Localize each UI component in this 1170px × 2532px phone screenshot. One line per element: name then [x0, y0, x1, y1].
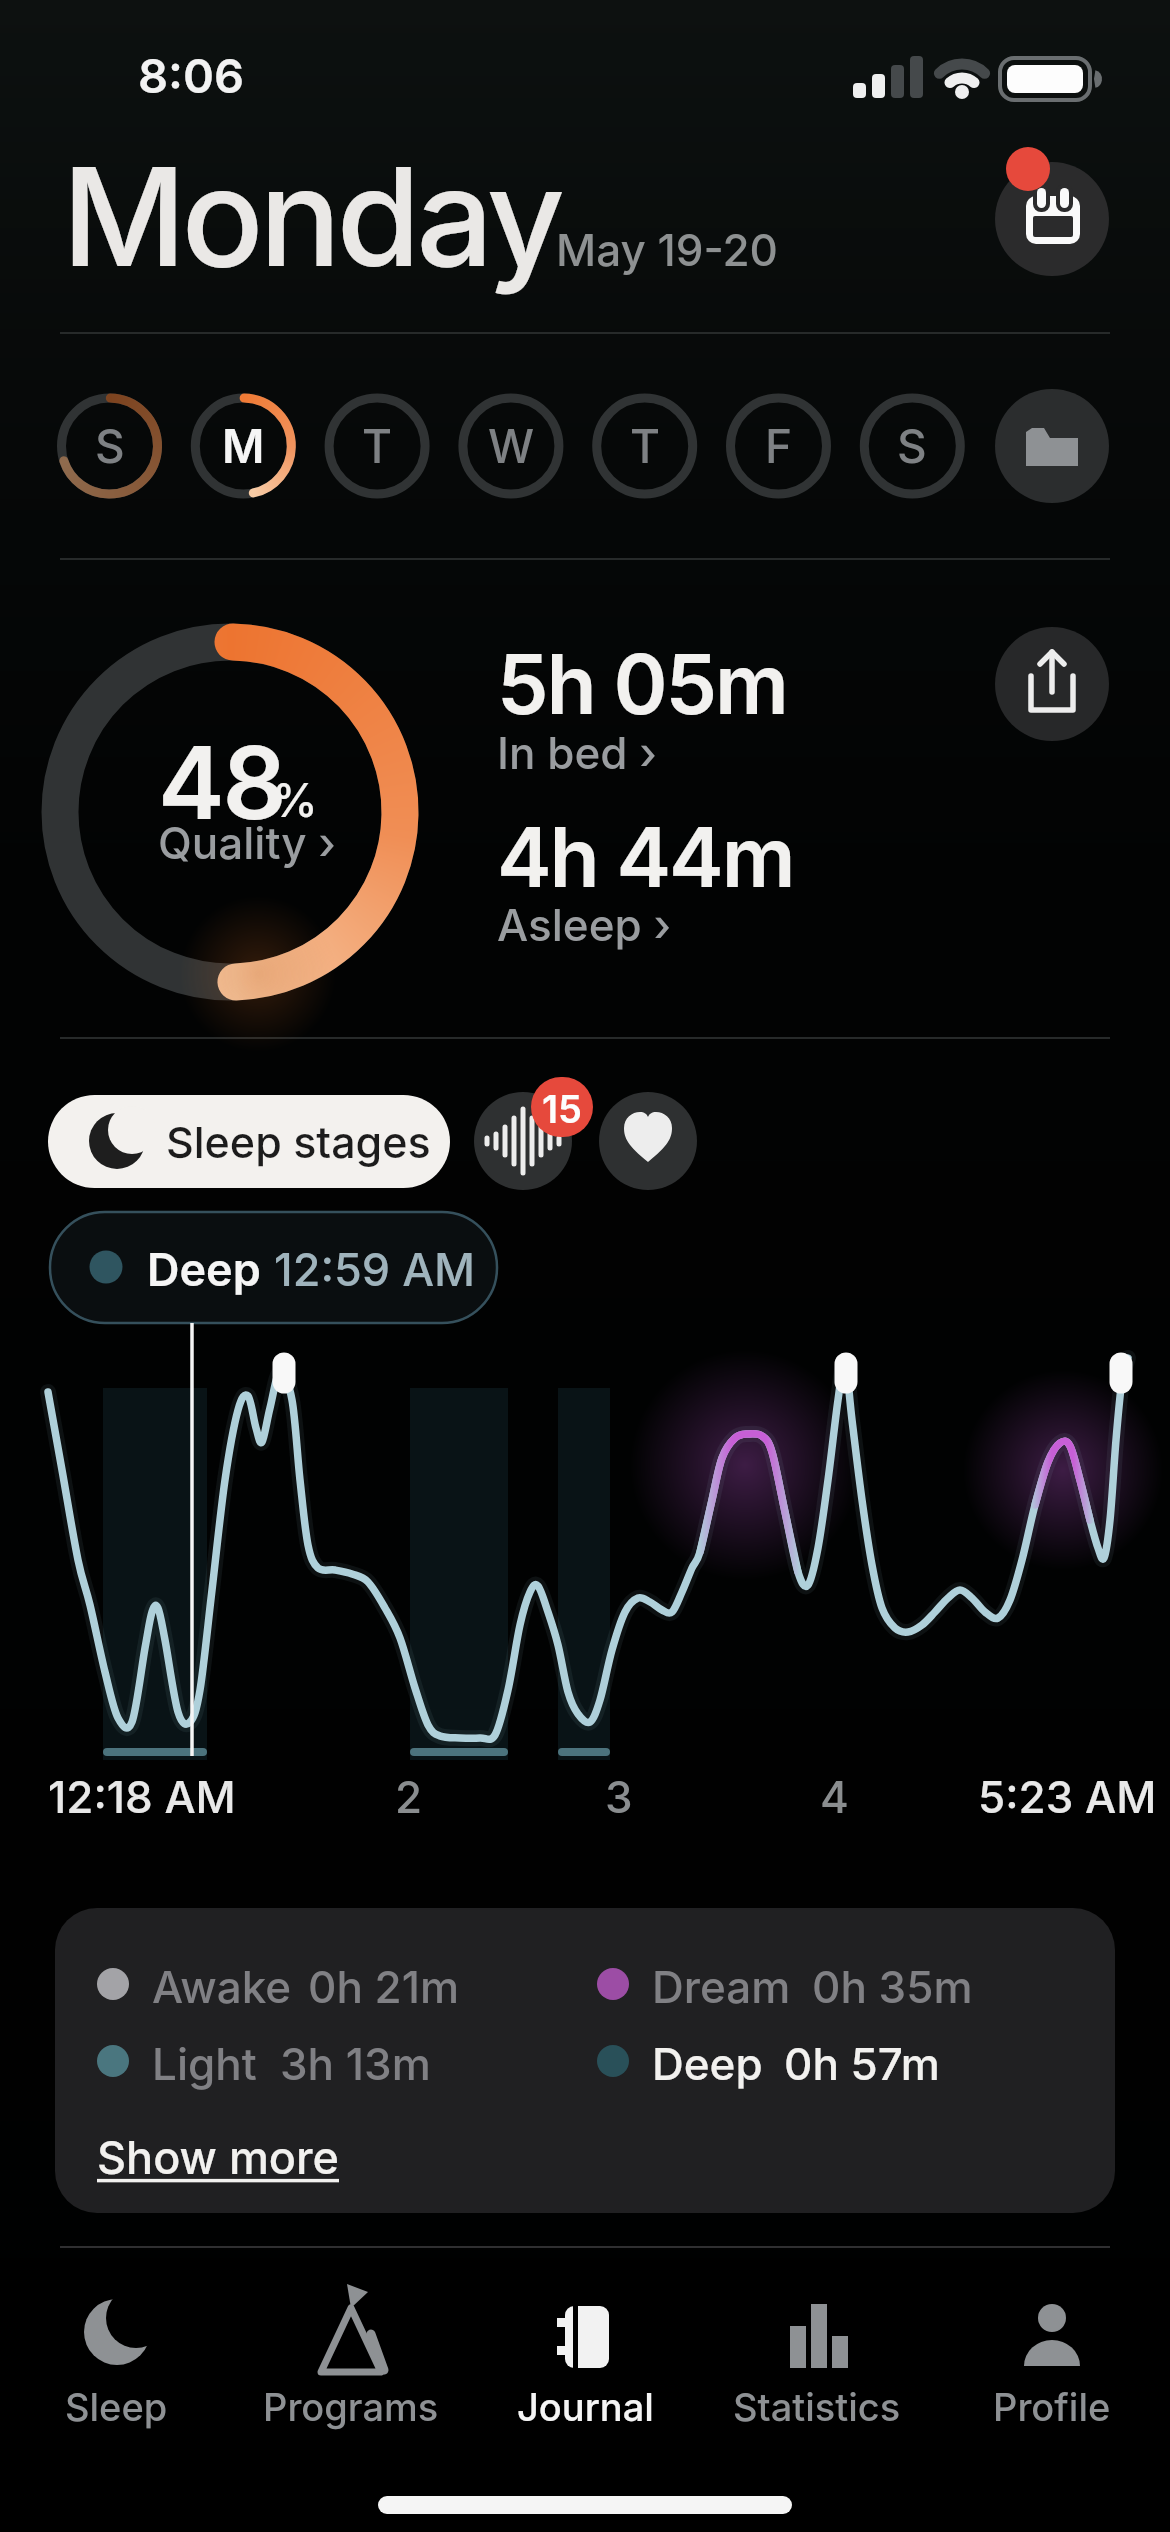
staticText: %: [272, 772, 318, 828]
staticText: Programs: [263, 2384, 439, 2430]
staticText: 0h 57m: [784, 2037, 940, 2090]
staticText: 48: [158, 722, 285, 843]
button[interactable]: [255, 2280, 447, 2420]
button[interactable]: [193, 396, 293, 496]
staticText: Light: [152, 2037, 257, 2090]
staticText: Sleep: [65, 2384, 168, 2430]
staticText: S: [897, 418, 927, 474]
staticText: W: [488, 418, 535, 474]
button[interactable]: [60, 642, 400, 982]
staticText: Statistics: [733, 2384, 901, 2430]
button[interactable]: [995, 627, 1109, 741]
staticText: 5h 05m: [497, 635, 787, 734]
staticText: 2: [395, 1770, 423, 1823]
button[interactable]: [599, 1092, 697, 1190]
button[interactable]: [474, 1092, 572, 1190]
staticText: Monday: [62, 134, 561, 299]
staticText: Deep: [652, 2037, 763, 2090]
button[interactable]: [595, 396, 695, 496]
staticText: 8:06: [138, 47, 245, 104]
button[interactable]: [956, 2280, 1148, 2420]
staticText: 0h 21m: [308, 1960, 460, 2013]
staticText: Quality ›: [158, 816, 336, 869]
staticText: 4h 44m: [497, 808, 794, 907]
staticText: 5:23 AM: [978, 1770, 1157, 1823]
staticText: Profile: [993, 2384, 1111, 2430]
button[interactable]: [497, 820, 797, 950]
staticText: Awake: [152, 1960, 292, 2013]
button[interactable]: [995, 389, 1109, 503]
button[interactable]: [497, 648, 797, 778]
staticText: M: [222, 418, 265, 474]
staticText: T: [630, 418, 661, 474]
staticText: 3h 13m: [280, 2037, 431, 2090]
button[interactable]: [721, 2280, 913, 2420]
staticText: 0h 35m: [812, 1960, 973, 2013]
button[interactable]: [729, 396, 829, 496]
staticText: S: [95, 418, 125, 474]
staticText: In bed ›: [497, 726, 657, 779]
staticText: Journal: [517, 2384, 654, 2430]
staticText: 15: [542, 1086, 582, 1132]
staticText: Deep: [147, 1242, 261, 1296]
staticText: 4: [820, 1770, 849, 1823]
button[interactable]: [995, 162, 1109, 276]
button[interactable]: [489, 2280, 681, 2420]
staticText: Asleep ›: [497, 898, 672, 951]
staticText: Show more: [97, 2130, 340, 2184]
button[interactable]: [97, 2115, 322, 2185]
staticText: 3: [605, 1770, 633, 1823]
button[interactable]: [48, 1095, 450, 1188]
button[interactable]: [327, 396, 427, 496]
staticText: T: [362, 418, 393, 474]
staticText: Sleep stages: [166, 1116, 431, 1168]
staticText: May 19-20: [556, 223, 779, 276]
staticText: Dream: [652, 1960, 791, 2013]
staticText: 12:59 AM: [274, 1242, 476, 1296]
button[interactable]: [862, 396, 962, 496]
staticText: F: [765, 418, 793, 474]
button[interactable]: [461, 396, 561, 496]
staticText: 12:18 AM: [48, 1770, 236, 1823]
button[interactable]: [60, 396, 160, 496]
button[interactable]: [20, 2280, 212, 2420]
